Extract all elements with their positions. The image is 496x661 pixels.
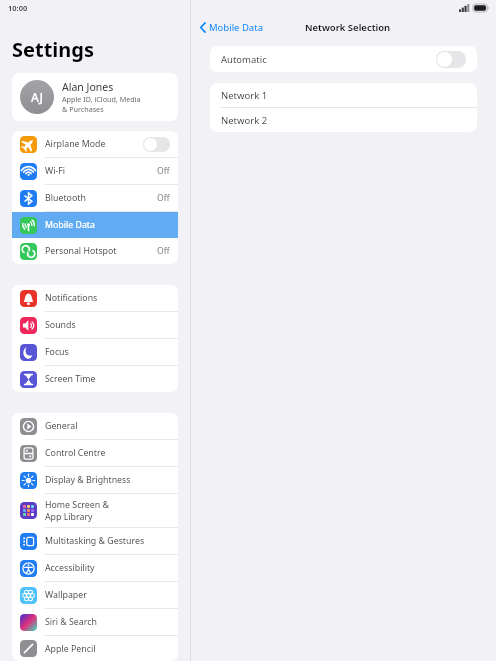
button[interactable]: Back to Mobile Data <box>191 19 269 36</box>
button[interactable]: General <box>12 413 178 439</box>
staticText: AJ <box>31 89 43 105</box>
button[interactable]: Personal Hotspot <box>12 238 178 264</box>
button[interactable]: Focus <box>12 339 178 365</box>
button[interactable]: Wallpaper <box>12 582 178 608</box>
staticText: Display & Brightness <box>45 474 131 486</box>
staticText: Accessibility <box>45 562 95 574</box>
button[interactable]: Mobile Data <box>12 212 178 238</box>
staticText: Off <box>157 192 170 204</box>
button[interactable]: Sounds <box>12 312 178 338</box>
button[interactable]: Airplane Mode <box>12 131 178 157</box>
staticText: Screen Time <box>45 373 96 385</box>
staticText: Siri & Search <box>45 616 97 628</box>
button[interactable]: Screen Time <box>12 366 178 392</box>
staticText: Network 2 <box>221 114 268 127</box>
staticText: Wi-Fi <box>45 165 66 177</box>
staticText: Bluetooth <box>45 192 86 204</box>
staticText: Mobile Data <box>45 219 95 231</box>
staticText: General <box>45 420 78 432</box>
staticText: Off <box>157 165 170 177</box>
button[interactable]: Control Centre <box>12 440 178 466</box>
staticText: Wallpaper <box>45 589 87 601</box>
button[interactable]: Notifications <box>12 285 178 311</box>
staticText: Network Selection <box>305 21 391 34</box>
button[interactable]: Network 1 <box>210 83 477 107</box>
staticText: Automatic <box>221 53 436 66</box>
staticText: Off <box>157 245 170 257</box>
staticText: Settings <box>12 36 94 63</box>
staticText: Apple Pencil <box>45 643 96 655</box>
button[interactable]: Network 2 <box>210 108 477 132</box>
button[interactable]: Bluetooth <box>12 185 178 211</box>
staticText: Personal Hotspot <box>45 245 117 257</box>
button[interactable]: Apple Pencil <box>12 636 178 661</box>
staticText: Notifications <box>45 292 98 304</box>
staticText: Home Screen & <box>45 499 109 511</box>
button[interactable]: Automatic <box>210 46 477 72</box>
staticText: App Library <box>45 511 93 523</box>
staticText: Sounds <box>45 319 76 331</box>
button[interactable]: Home Screen & <box>12 494 178 527</box>
staticText: Apple ID, iCloud, Media <box>62 94 141 104</box>
staticText: Mobile Data <box>209 21 263 34</box>
staticText: Control Centre <box>45 447 106 459</box>
staticText: & Purchases <box>62 104 104 114</box>
staticText: Network 1 <box>221 89 268 102</box>
staticText: Alan Jones <box>62 80 114 94</box>
button[interactable]: Display & Brightness <box>12 467 178 493</box>
staticText: Airplane Mode <box>45 138 106 150</box>
button[interactable]: Siri & Search <box>12 609 178 635</box>
button[interactable]: AJ <box>12 73 178 121</box>
staticText: Focus <box>45 346 69 358</box>
staticText: Multitasking & Gestures <box>45 535 145 547</box>
button[interactable]: Wi-Fi <box>12 158 178 184</box>
button[interactable]: Accessibility <box>12 555 178 581</box>
staticText: 10:00 <box>8 3 28 13</box>
button[interactable]: Multitasking & Gestures <box>12 528 178 554</box>
